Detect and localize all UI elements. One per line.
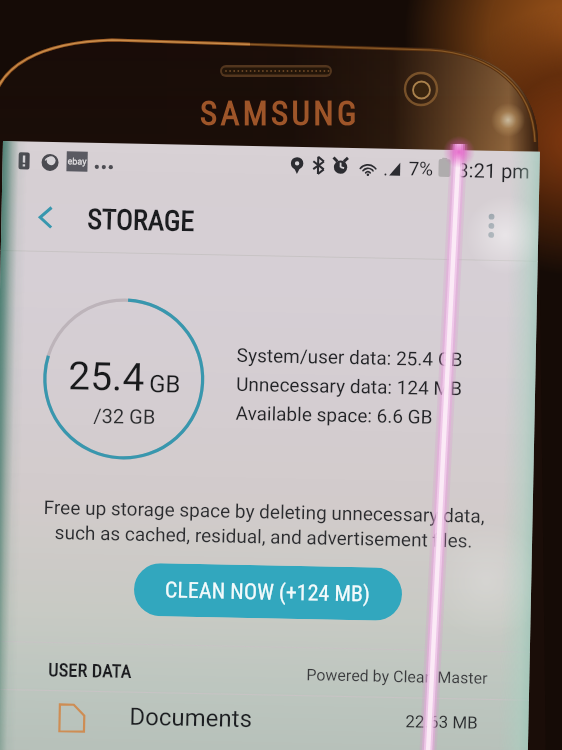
staticText: STORAGE [87, 203, 195, 238]
staticText: 3:21 pm [457, 158, 531, 183]
staticText: System/user data: 25.4 GB [236, 344, 463, 370]
staticText: Powered by Clean Master [306, 665, 488, 688]
staticText: USER DATA [48, 659, 133, 682]
button[interactable]: Navigate up [18, 187, 73, 246]
staticText: /32 GB [93, 404, 156, 428]
button[interactable]: Documents [0, 690, 529, 750]
staticText: 25.4 [68, 353, 146, 401]
staticText: 22.63 MB [405, 711, 479, 733]
button[interactable]: More options [468, 198, 515, 253]
staticText: Unnecessary data: 124 MB [236, 373, 462, 399]
staticText: ebay [67, 156, 87, 168]
staticText: CLEAN NOW (+124 MB) [165, 577, 371, 607]
button[interactable]: CLEAN NOW (+124 MB) [133, 563, 402, 621]
staticText: 7% [408, 157, 434, 180]
staticText: Documents [129, 703, 253, 733]
staticText: Free up storage space by deleting unnece… [43, 496, 485, 552]
staticText: Available space: 6.6 GB [235, 402, 433, 428]
staticText: GB [149, 370, 181, 399]
staticText: SAMSUNG [200, 94, 360, 133]
